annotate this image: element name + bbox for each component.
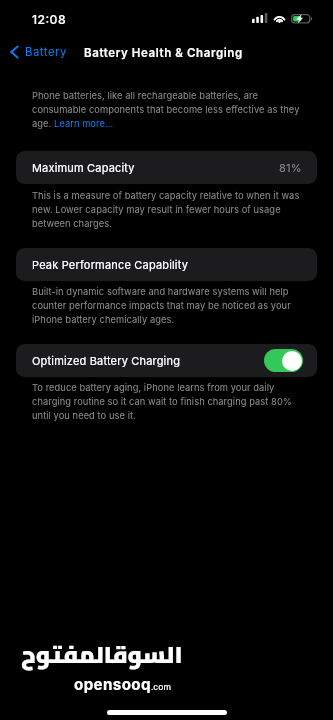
button[interactable]: Maximum Capacity — [16, 151, 317, 184]
staticText: 81% — [279, 161, 302, 174]
staticText: Built-in dynamic software and hardware s… — [32, 284, 302, 326]
staticText: This is a measure of battery capacity re… — [32, 188, 302, 230]
staticText: To reduce battery aging, iPhone learns f… — [32, 380, 302, 422]
staticText: Battery Health & Charging — [84, 46, 243, 60]
other: Wi-Fi — [273, 13, 286, 23]
staticText: Maximum Capacity — [32, 161, 135, 174]
staticText: Peak Performance Capability — [32, 258, 189, 271]
button[interactable]: Optimized Battery Charging toggle, on — [264, 349, 303, 372]
button[interactable]: Optimized Battery Charging — [16, 344, 317, 377]
staticText: 12:08 — [32, 12, 67, 27]
staticText: opensooq.com — [74, 675, 171, 693]
staticText: السوقالمفتوح — [21, 632, 183, 676]
staticText: Optimized Battery Charging — [32, 354, 181, 367]
staticText: Phone batteries, like all rechargeable b… — [32, 88, 302, 130]
other: Battery charging — [291, 14, 313, 25]
button[interactable]: Peak Performance Capability — [16, 248, 317, 281]
button[interactable]: Battery — [10, 45, 67, 59]
staticText: Battery — [25, 45, 67, 59]
other: Cellular signal — [252, 13, 267, 23]
